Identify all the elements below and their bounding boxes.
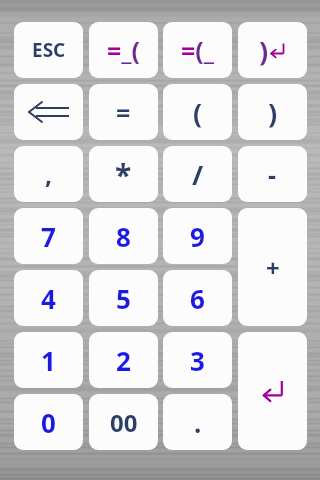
button[interactable]: Enter — [238, 332, 307, 450]
button[interactable]: - — [238, 146, 307, 202]
staticText: + — [266, 251, 280, 284]
button[interactable]: 6 — [163, 270, 232, 326]
button[interactable]: / — [163, 146, 232, 202]
button[interactable]: 2 — [89, 332, 158, 388]
staticText: 8 — [116, 219, 131, 254]
staticText: ( — [193, 94, 203, 131]
staticText: = — [116, 95, 131, 129]
staticText: 7 — [41, 219, 56, 254]
staticText: * — [115, 154, 132, 195]
button[interactable]: ( — [163, 84, 232, 140]
button[interactable]: 1 — [14, 332, 83, 388]
staticText: 1 — [41, 343, 56, 378]
button[interactable]: 0 — [14, 394, 83, 450]
button[interactable]: 5 — [89, 270, 158, 326]
staticText: . — [194, 405, 202, 440]
staticText: 4 — [41, 281, 56, 316]
staticText: , — [45, 157, 53, 191]
staticText: 3 — [190, 343, 205, 378]
staticText: 2 — [116, 343, 131, 378]
button[interactable]: , — [14, 146, 83, 202]
button[interactable]: Close parenthesis and enter — [238, 22, 307, 78]
button[interactable]: Backspace — [14, 84, 83, 140]
button[interactable]: 7 — [14, 208, 83, 264]
staticText: 00 — [110, 406, 138, 439]
staticText: 5 — [116, 281, 131, 316]
staticText: 6 — [190, 281, 205, 316]
button[interactable]: * — [89, 146, 158, 202]
staticText: ) — [259, 32, 269, 69]
staticText: 0 — [41, 405, 56, 440]
staticText: - — [268, 157, 277, 191]
button[interactable]: ) — [238, 84, 307, 140]
staticText: ESC — [32, 37, 66, 63]
button[interactable]: 4 — [14, 270, 83, 326]
staticText: =(_ — [181, 33, 215, 67]
button[interactable]: 8 — [89, 208, 158, 264]
button[interactable]: 3 — [163, 332, 232, 388]
button[interactable]: 00 — [89, 394, 158, 450]
staticText: ) — [268, 94, 278, 131]
button[interactable]: . — [163, 394, 232, 450]
button[interactable]: = — [89, 84, 158, 140]
button[interactable]: =(_ — [163, 22, 232, 78]
button[interactable]: ESC — [14, 22, 83, 78]
staticText: =_( — [107, 33, 141, 67]
button[interactable]: + — [238, 208, 307, 326]
button[interactable]: =_( — [89, 22, 158, 78]
staticText: 9 — [190, 219, 205, 254]
button[interactable]: 9 — [163, 208, 232, 264]
staticText: / — [192, 156, 204, 193]
